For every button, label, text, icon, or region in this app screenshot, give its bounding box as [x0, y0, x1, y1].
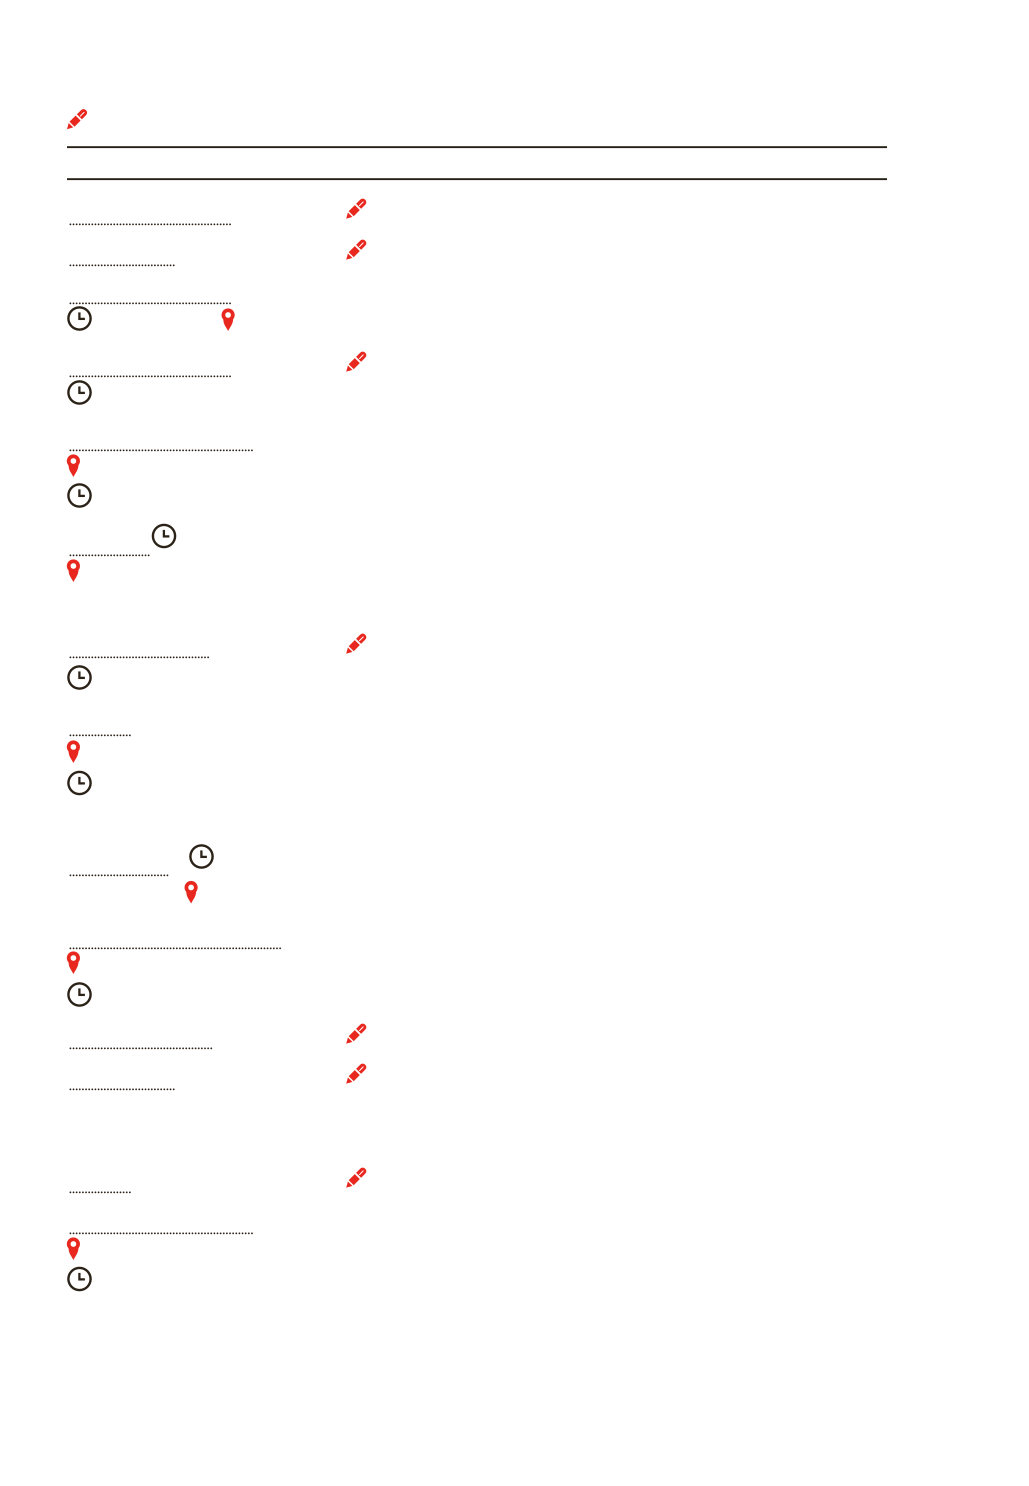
button[interactable]: Entry 7: [0, 1020, 1029, 1094]
button[interactable]: Entry 1: [0, 196, 1029, 336]
button[interactable]: Entry 5: [0, 842, 1029, 908]
button[interactable]: Edit page title: [67, 100, 887, 180]
button[interactable]: Entry 4: [0, 630, 1029, 800]
button[interactable]: Entry 3: [0, 446, 1029, 586]
button[interactable]: Entry 8: [0, 1164, 1029, 1294]
button[interactable]: Entry 6: [0, 944, 1029, 1010]
button[interactable]: Entry 2: [0, 348, 1029, 424]
